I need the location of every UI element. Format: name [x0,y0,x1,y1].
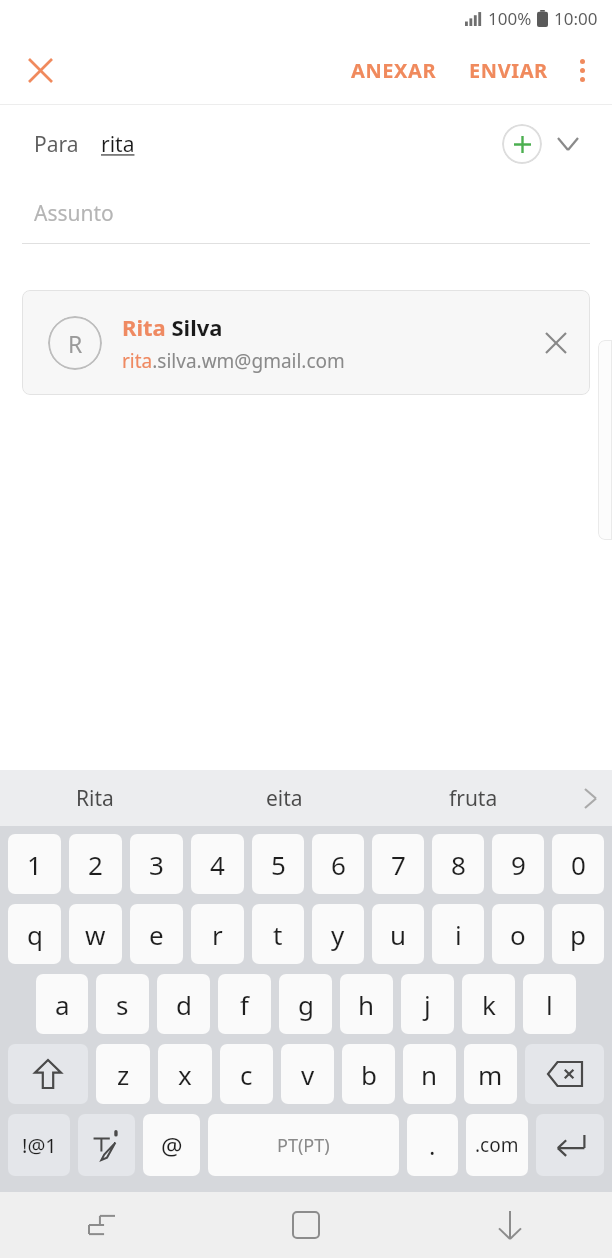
staticText: 0 [571,847,586,882]
staticText: u [390,917,407,952]
button[interactable]: 5 [252,834,304,894]
staticText: .com [475,1132,519,1158]
button[interactable]: Remove recipient [532,319,580,367]
staticText: r [212,917,223,952]
button[interactable]: Hide keyboard [408,1192,612,1258]
staticText: a [55,987,70,1022]
button[interactable]: @ [143,1114,200,1176]
staticText: eita [266,784,303,813]
button[interactable]: s [96,974,149,1034]
button[interactable]: 7 [372,834,424,894]
staticText: rita.silva.wm@gmail.com [122,348,345,374]
button[interactable]: z [96,1044,150,1104]
button[interactable]: b [342,1044,395,1104]
button[interactable]: e [130,904,183,964]
staticText: x [178,1057,192,1092]
button[interactable]: Enter [536,1114,604,1176]
button[interactable]: m [464,1044,517,1104]
button[interactable]: p [552,904,604,964]
button[interactable]: u [372,904,424,964]
button[interactable]: Recents [0,1192,204,1258]
staticText: 100% [488,7,532,30]
button[interactable]: t [252,904,304,964]
staticText: 4 [210,847,225,882]
button[interactable]: g [279,974,332,1034]
button[interactable]: r [191,904,244,964]
staticText: Para [34,130,79,159]
button[interactable]: x [158,1044,212,1104]
button[interactable]: More suggestions [568,770,612,826]
staticText: q [27,917,43,952]
button[interactable]: Expand [542,118,594,170]
staticText: Rita Silva [122,312,223,342]
staticText: v [301,1057,315,1092]
button[interactable]: d [157,974,210,1034]
button[interactable]: Handwriting [78,1114,135,1176]
staticText: o [510,917,526,952]
button[interactable]: 3 [130,834,183,894]
staticText: Rita [76,784,114,813]
button[interactable]: 2 [69,834,122,894]
staticText: 8 [451,847,466,882]
staticText: c [240,1057,253,1092]
staticText: Assunto [34,199,114,228]
staticText: z [117,1057,130,1092]
button[interactable]: l [523,974,576,1034]
staticText: PT(PT) [277,1133,330,1158]
button[interactable]: 1 [8,834,61,894]
button[interactable]: 0 [552,834,604,894]
button[interactable]: w [69,904,122,964]
button[interactable]: k [462,974,515,1034]
button[interactable]: o [492,904,544,964]
button[interactable]: Shift [8,1044,88,1104]
button[interactable]: !@1 [8,1114,70,1176]
button[interactable]: More options [558,46,606,94]
button[interactable]: Rita [0,770,190,826]
button[interactable]: 8 [432,834,484,894]
button[interactable]: 9 [492,834,544,894]
button[interactable]: Close [14,44,66,96]
button[interactable]: Add recipient [502,124,542,164]
staticText: l [546,987,553,1022]
staticText: w [85,917,106,952]
button[interactable]: f [218,974,271,1034]
button[interactable]: 6 [312,834,364,894]
button[interactable]: Home [204,1192,408,1258]
button[interactable]: ENVIAR [459,47,558,94]
staticText: h [358,987,375,1022]
button[interactable]: R [22,290,590,395]
button[interactable]: a [36,974,88,1034]
staticText: ANEXAR [351,57,437,84]
button[interactable]: fruta [379,770,568,826]
button[interactable]: j [401,974,454,1034]
staticText: 7 [391,847,406,882]
staticText: d [176,987,192,1022]
button[interactable]: q [8,904,61,964]
staticText: . [429,1129,436,1162]
button[interactable]: y [312,904,364,964]
staticText: 9 [511,847,526,882]
button[interactable]: i [432,904,484,964]
button[interactable]: h [340,974,393,1034]
staticText: 10:00 [554,7,598,30]
button[interactable]: Backspace [525,1044,604,1104]
staticText: rita [101,130,135,159]
staticText: g [298,987,314,1022]
button[interactable]: . [407,1114,458,1176]
staticText: y [331,917,345,952]
button[interactable]: 4 [191,834,244,894]
button[interactable]: v [281,1044,334,1104]
button[interactable]: PT(PT) [208,1114,399,1176]
staticText: 1 [27,847,42,882]
button[interactable]: c [220,1044,273,1104]
button[interactable]: n [403,1044,456,1104]
button[interactable]: ANEXAR [341,47,447,94]
staticText: n [421,1057,438,1092]
staticText: 6 [331,847,346,882]
button[interactable]: eita [190,770,379,826]
staticText: t [273,917,283,952]
button[interactable]: .com [466,1114,528,1176]
staticText: e [149,917,164,952]
staticText: fruta [449,784,498,813]
staticText: p [570,917,586,952]
